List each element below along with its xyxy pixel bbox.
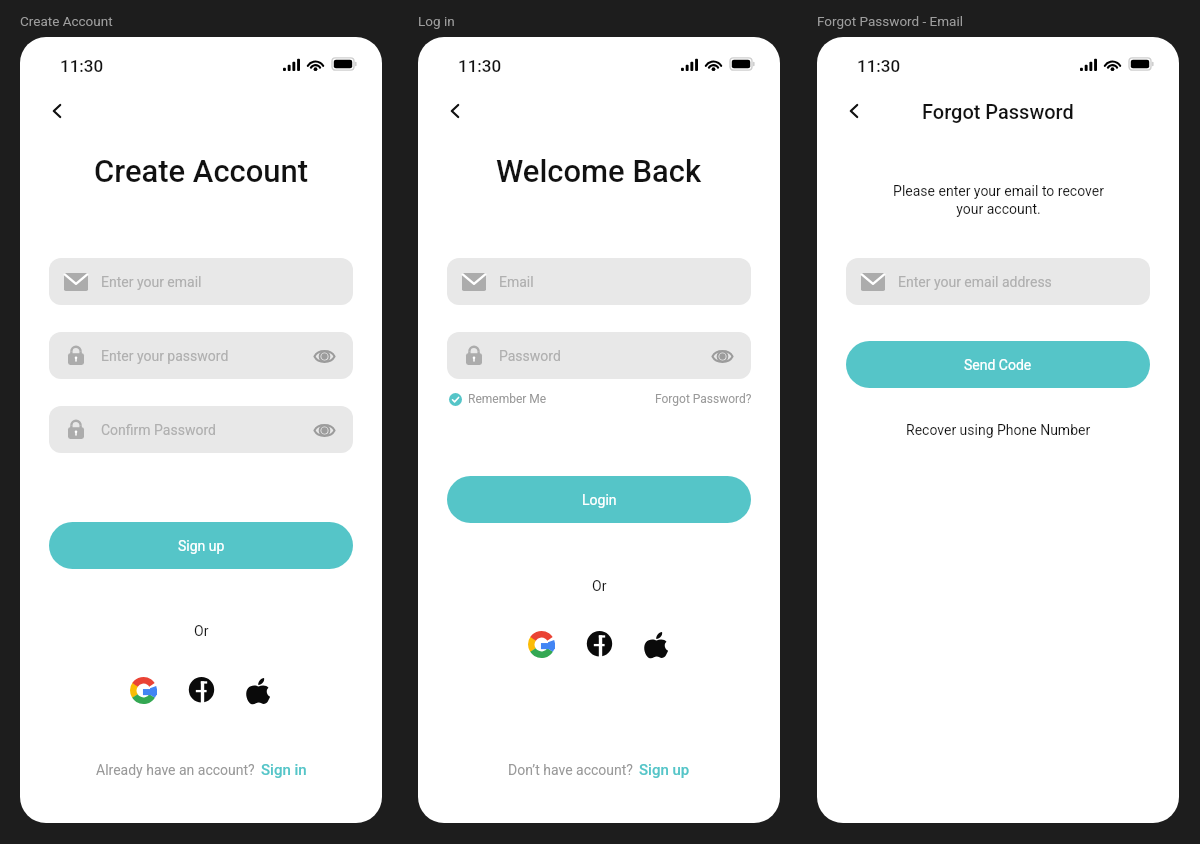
staticText: Forgot Password? xyxy=(655,392,752,406)
staticText: 11:30 xyxy=(458,56,502,76)
staticText: 11:30 xyxy=(857,56,901,76)
button[interactable]: Forgot Password? xyxy=(655,392,752,406)
button[interactable]: Enter your email xyxy=(49,258,353,305)
staticText: Already have an account? xyxy=(96,762,255,778)
button[interactable]: Sign up xyxy=(639,761,690,779)
staticText: Welcome Back xyxy=(496,153,702,189)
button[interactable]: Sign in with Google xyxy=(526,629,556,659)
button[interactable]: Show password xyxy=(305,411,343,449)
staticText: Password xyxy=(499,348,561,364)
staticText: Sign up xyxy=(178,538,225,554)
staticText: Sign in xyxy=(261,761,307,779)
button[interactable]: Sign in with Google xyxy=(128,675,158,705)
staticText: Enter your email xyxy=(101,274,202,290)
staticText: Please enter your email to recover your … xyxy=(893,183,1104,218)
staticText: Or xyxy=(194,623,209,639)
staticText: Confirm Password xyxy=(101,422,216,438)
button[interactable]: Remember Me xyxy=(449,392,547,406)
button[interactable]: Sign in xyxy=(261,761,307,779)
staticText: Log in xyxy=(418,13,455,29)
staticText: Enter your password xyxy=(101,348,229,364)
staticText: Sign up xyxy=(639,761,690,779)
staticText: Send Code xyxy=(964,357,1032,373)
button[interactable]: Sign in with Facebook xyxy=(584,629,614,659)
staticText: Or xyxy=(592,578,607,594)
button[interactable]: Send Code xyxy=(846,341,1150,388)
staticText: Enter your email address xyxy=(898,274,1052,290)
staticText: Don’t have account? xyxy=(508,762,633,778)
button[interactable]: Confirm Password xyxy=(49,406,353,453)
staticText: Recover using Phone Number xyxy=(906,422,1091,438)
staticText: Create Account xyxy=(20,13,113,29)
button[interactable]: Back xyxy=(834,91,874,131)
button[interactable]: Enter your password xyxy=(49,332,353,379)
button[interactable]: Sign in with Apple xyxy=(641,629,671,659)
staticText: Remember Me xyxy=(468,392,547,406)
staticText: 11:30 xyxy=(60,56,104,76)
button[interactable]: Sign in with Apple xyxy=(243,675,273,705)
button[interactable]: Email xyxy=(447,258,751,305)
staticText: Email xyxy=(499,274,534,290)
staticText: Forgot Password - Email xyxy=(817,13,963,29)
button[interactable]: Enter your email address xyxy=(846,258,1150,305)
button[interactable]: Password xyxy=(447,332,751,379)
button[interactable]: Login xyxy=(447,476,751,523)
button[interactable]: Back xyxy=(37,91,77,131)
button[interactable]: Sign up xyxy=(49,522,353,569)
button[interactable]: Recover using Phone Number xyxy=(906,422,1091,438)
button[interactable]: Back xyxy=(435,91,475,131)
button[interactable]: Show password xyxy=(703,337,741,375)
button[interactable]: Show password xyxy=(305,337,343,375)
button[interactable]: Sign in with Facebook xyxy=(186,675,216,705)
staticText: Forgot Password xyxy=(922,100,1074,123)
staticText: Login xyxy=(582,492,617,508)
staticText: Create Account xyxy=(94,153,309,189)
